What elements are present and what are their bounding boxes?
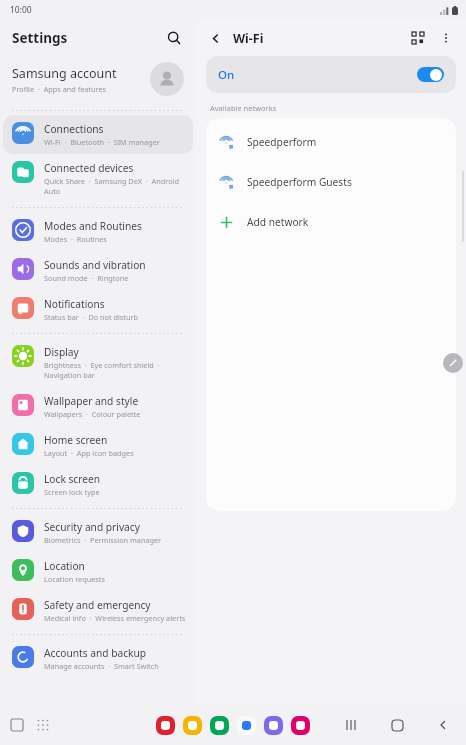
button[interactable]: Safety and emergency <box>3 591 193 630</box>
button[interactable]: App <box>264 716 283 735</box>
button[interactable]: Display <box>3 338 193 387</box>
staticText: On <box>218 67 235 83</box>
staticText: Safety and emergency <box>44 598 151 612</box>
staticText: Location requests <box>44 574 105 584</box>
staticText: Notifications <box>44 297 105 311</box>
staticText: Location <box>44 559 85 573</box>
staticText: 10:00 <box>10 4 32 16</box>
staticText: Status bar · Do not disturb <box>44 312 139 322</box>
staticText: Speedperform <box>247 135 317 149</box>
staticText: Profile · Apps and features <box>12 84 106 94</box>
staticText: Add network <box>247 215 309 229</box>
staticText: Lock screen <box>44 472 101 486</box>
button[interactable]: Connected devices <box>3 154 193 203</box>
button[interactable]: App <box>183 716 202 735</box>
staticText: Sounds and vibration <box>44 258 146 272</box>
staticText: Available networks <box>210 103 277 113</box>
staticText: Modes · Routines <box>44 234 107 244</box>
staticText: Connections <box>44 122 104 136</box>
staticText: Manage accounts · Smart Switch <box>44 661 159 671</box>
button[interactable]: Modes and Routines <box>3 212 193 251</box>
button[interactable]: All apps <box>33 715 53 735</box>
button[interactable]: Edit <box>443 353 463 373</box>
button[interactable]: Recent apps <box>340 714 362 736</box>
staticText: Quick Share · Samsung DeX · Android Auto <box>44 176 187 196</box>
button[interactable]: App <box>156 716 175 735</box>
button[interactable]: More options <box>435 27 457 49</box>
button[interactable]: Lock screen <box>3 465 193 504</box>
button[interactable]: Add network <box>206 202 456 242</box>
staticText: Security and privacy <box>44 520 140 534</box>
staticText: Wallpaper and style <box>44 394 139 408</box>
staticText: Speedperform Guests <box>247 175 352 189</box>
staticText: Medical info · Wireless emergency alerts <box>44 613 186 623</box>
staticText: Accounts and backup <box>44 646 147 660</box>
staticText: Samsung account <box>12 65 117 82</box>
staticText: Wallpapers · Colour palette <box>44 409 141 419</box>
staticText: Wi-Fi · Bluetooth · SIM manager <box>44 137 160 147</box>
staticText: Screen lock type <box>44 487 100 497</box>
button[interactable]: Accounts and backup <box>3 639 193 678</box>
button[interactable]: Connections <box>3 115 193 154</box>
button[interactable]: Home <box>386 714 408 736</box>
button[interactable]: Home screen <box>3 426 193 465</box>
button[interactable]: Search <box>161 25 187 51</box>
button[interactable]: Speedperform <box>206 122 456 162</box>
button[interactable]: Back <box>432 714 454 736</box>
button[interactable]: Samsung account <box>0 56 196 106</box>
staticText: Layout · App icon badges <box>44 448 134 458</box>
staticText: Brightness · Eye comfort shield · Naviga… <box>44 360 187 380</box>
button[interactable]: On <box>206 56 456 93</box>
button[interactable]: Speedperform Guests <box>206 162 456 202</box>
button[interactable]: Notifications <box>3 290 193 329</box>
button[interactable]: Sounds and vibration <box>3 251 193 290</box>
staticText: Connected devices <box>44 161 134 175</box>
staticText: Modes and Routines <box>44 219 142 233</box>
button[interactable]: App <box>291 716 310 735</box>
button[interactable]: App <box>237 716 256 735</box>
staticText: Biometrics · Permission manager <box>44 535 162 545</box>
button[interactable]: Scan QR code <box>407 27 429 49</box>
staticText: Sound mode · Ringtone <box>44 273 129 283</box>
button[interactable]: Security and privacy <box>3 513 193 552</box>
button[interactable]: Wallpaper and style <box>3 387 193 426</box>
staticText: Wi-Fi <box>233 30 264 47</box>
staticText: Settings <box>12 29 68 47</box>
button[interactable]: Back <box>205 28 225 48</box>
button[interactable]: Recents <box>7 715 27 735</box>
staticText: Home screen <box>44 433 108 447</box>
button[interactable]: App <box>210 716 229 735</box>
button[interactable]: Location <box>3 552 193 591</box>
staticText: Display <box>44 345 79 359</box>
